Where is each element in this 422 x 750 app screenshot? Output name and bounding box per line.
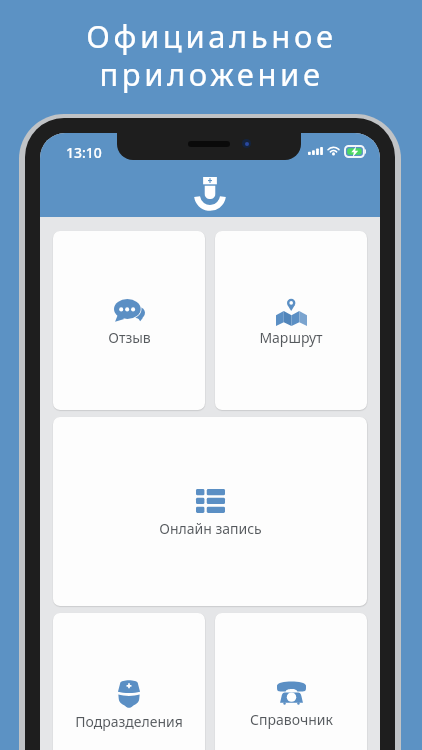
staticText: 13:10 xyxy=(66,143,102,159)
staticText: Маршрут xyxy=(259,328,323,347)
staticText: Онлайн запись xyxy=(159,519,262,538)
button[interactable]: Маршрут xyxy=(215,231,367,410)
button[interactable]: Подразделения xyxy=(53,613,205,750)
button[interactable]: Логотип приложения xyxy=(194,177,226,211)
button[interactable]: Онлайн запись xyxy=(53,417,367,606)
button[interactable]: Отзыв xyxy=(53,231,205,410)
button[interactable]: Справочник xyxy=(215,613,367,750)
staticText: приложение xyxy=(99,53,324,95)
staticText: Справочник xyxy=(250,710,333,729)
staticText: Отзыв xyxy=(108,328,151,347)
staticText: Официальное xyxy=(86,15,337,57)
staticText: Подразделения xyxy=(75,712,183,731)
